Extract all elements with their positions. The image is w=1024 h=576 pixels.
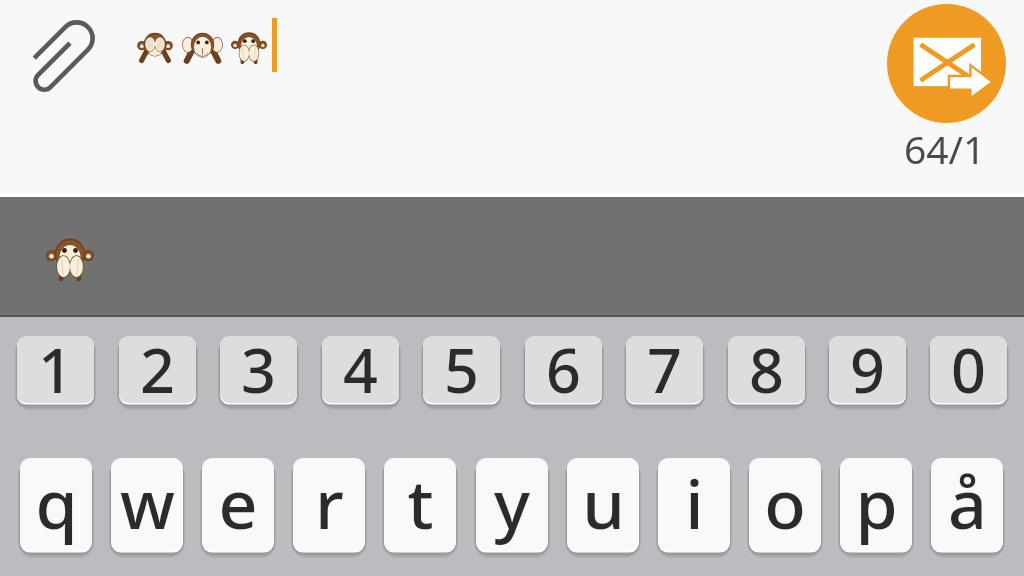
button[interactable]: w (111, 458, 183, 551)
button[interactable]: o (749, 458, 821, 551)
button[interactable]: 4 (322, 336, 399, 403)
staticText: e (218, 458, 258, 549)
staticText: 3 (241, 336, 276, 395)
staticText: y (494, 458, 530, 549)
button[interactable]: e (202, 458, 274, 551)
button[interactable]: 2 (119, 336, 196, 403)
staticText: 4 (343, 336, 378, 395)
button[interactable]: 1 (17, 336, 94, 403)
staticText: p (855, 458, 898, 549)
button[interactable]: 3 (220, 336, 297, 403)
button[interactable]: r (293, 458, 365, 551)
staticText: 0 (951, 336, 986, 395)
button[interactable]: u (567, 458, 639, 551)
button[interactable]: i (658, 458, 730, 551)
button[interactable]: 5 (423, 336, 500, 403)
staticText: q (35, 458, 78, 549)
button[interactable]: 0 (930, 336, 1007, 403)
staticText: w (120, 458, 175, 549)
button[interactable]: 6 (525, 336, 602, 403)
button[interactable]: Attach file (14, 4, 114, 108)
staticText: 6 (546, 336, 581, 395)
staticText: 64/1 (904, 122, 986, 175)
staticText: t (407, 458, 434, 549)
button[interactable]: 9 (829, 336, 906, 403)
staticText: u (582, 458, 625, 549)
staticText: r (315, 458, 344, 549)
button[interactable]: 7 (626, 336, 703, 403)
button[interactable]: t (384, 458, 456, 551)
button[interactable]: Send message (887, 4, 1006, 123)
button[interactable]: å (931, 458, 1003, 551)
staticText: i (685, 458, 704, 549)
staticText: o (764, 458, 806, 549)
button[interactable]: p (840, 458, 912, 551)
staticText: 9 (850, 336, 885, 395)
staticText: 8 (749, 336, 784, 395)
button[interactable]: q (20, 458, 92, 551)
button[interactable]: 8 (728, 336, 805, 403)
button[interactable]: Message text field (124, 6, 880, 186)
button[interactable]: y (476, 458, 548, 551)
staticText: 2 (140, 336, 175, 395)
staticText: 1 (38, 336, 73, 395)
staticText: å (948, 458, 987, 549)
staticText: 5 (444, 336, 479, 395)
button[interactable]: Speak-no-evil monkey emoji suggestion (40, 227, 100, 287)
staticText: 7 (647, 336, 682, 395)
